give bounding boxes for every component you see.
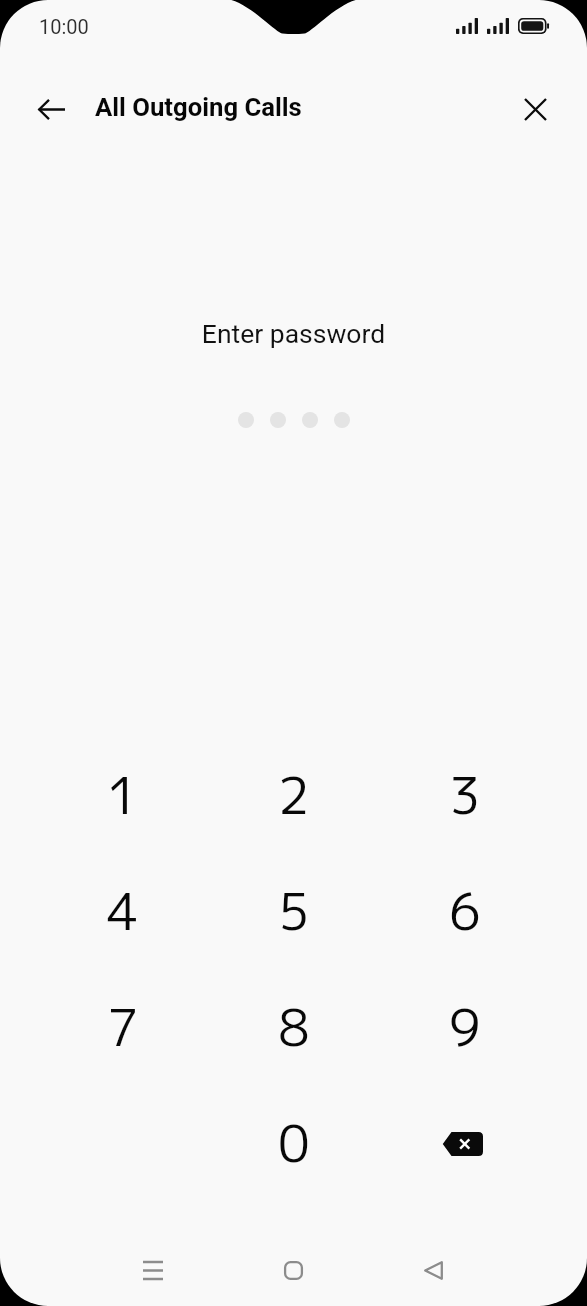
button[interactable]: Close — [511, 85, 559, 133]
staticText: 5 — [278, 875, 310, 946]
staticText: All Outgoing Calls — [95, 92, 302, 122]
button[interactable]: Back — [413, 1250, 453, 1290]
button[interactable]: 8 — [208, 968, 379, 1084]
staticText: 4 — [107, 875, 139, 946]
staticText: 6 — [449, 875, 481, 946]
button[interactable]: Back — [27, 85, 75, 133]
other: Backspace — [442, 1132, 483, 1156]
staticText: 2 — [278, 759, 310, 830]
staticText: 10:00 — [39, 15, 89, 38]
staticText: 3 — [449, 759, 481, 830]
staticText: 7 — [107, 991, 139, 1062]
staticText: 8 — [278, 991, 310, 1062]
button[interactable]: 4 — [37, 852, 208, 968]
button[interactable]: Recent apps — [133, 1250, 173, 1290]
button[interactable]: 6 — [379, 852, 550, 968]
staticText: 1 — [107, 759, 139, 830]
staticText: 0 — [278, 1107, 310, 1178]
button[interactable]: 9 — [379, 968, 550, 1084]
button[interactable]: 7 — [37, 968, 208, 1084]
button[interactable]: 5 — [208, 852, 379, 968]
button[interactable]: 3 — [379, 736, 550, 852]
button[interactable]: 2 — [208, 736, 379, 852]
button[interactable]: 0 — [208, 1084, 379, 1200]
staticText: 9 — [449, 991, 481, 1062]
button[interactable]: Home — [273, 1250, 313, 1290]
button[interactable]: 1 — [37, 736, 208, 852]
staticText: Enter password — [0, 318, 587, 349]
button[interactable]: Backspace — [379, 1084, 550, 1200]
